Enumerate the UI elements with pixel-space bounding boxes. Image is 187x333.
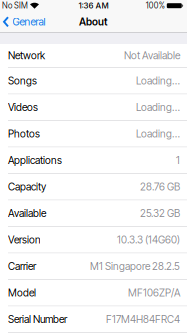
button[interactable]: Back xyxy=(0,16,45,28)
staticText: Loading… xyxy=(136,74,180,87)
staticText: 25.32 GB xyxy=(140,207,180,219)
staticText: Photos xyxy=(8,127,40,140)
staticText: MF106ZP/A xyxy=(128,286,180,299)
staticText: Capacity xyxy=(8,180,46,193)
staticText: 10.3.3 (14G60) xyxy=(117,233,180,246)
staticText: F17M4H84FRC4 xyxy=(106,313,180,325)
staticText: Carrier xyxy=(8,260,36,272)
staticText: 1 xyxy=(176,154,180,166)
staticText: Not Available xyxy=(124,49,180,62)
staticText: Songs xyxy=(8,74,37,87)
staticText: Available xyxy=(8,207,46,219)
staticText: Videos xyxy=(8,101,38,113)
staticText: Model xyxy=(8,286,36,299)
staticText: Network xyxy=(8,49,45,62)
staticText: General xyxy=(12,16,45,28)
staticText: 1:36 AM xyxy=(78,1,108,11)
staticText: About xyxy=(79,16,108,28)
staticText: Serial Number xyxy=(8,313,67,325)
staticText: 100% xyxy=(146,1,165,11)
staticText: 28.76 GB xyxy=(140,180,180,193)
staticText: No SIM xyxy=(2,1,28,11)
staticText: Loading… xyxy=(136,101,180,113)
staticText: Applications xyxy=(8,154,62,166)
staticText: M1 Singapore 28.2.5 xyxy=(90,260,180,272)
staticText: Version xyxy=(8,233,41,246)
staticText: Loading… xyxy=(136,127,180,140)
